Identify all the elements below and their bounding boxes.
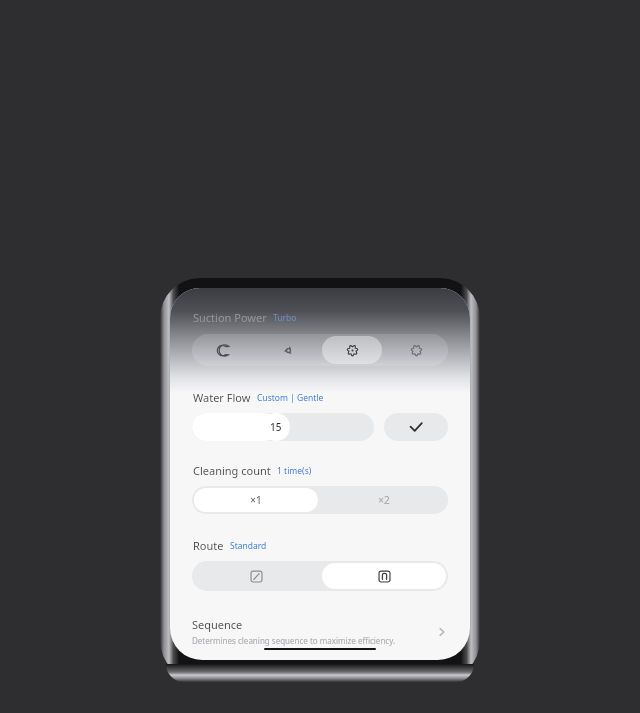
button[interactable]: Route deep <box>322 563 446 589</box>
button[interactable]: ×2 <box>322 488 446 512</box>
button[interactable]: Standard <box>258 336 318 364</box>
staticText: Standard <box>230 540 267 552</box>
staticText: 15 <box>270 420 282 434</box>
staticText: Determines cleaning sequence to maximize… <box>192 635 396 646</box>
button[interactable]: Quiet <box>194 336 254 364</box>
button[interactable]: 15 <box>192 413 374 441</box>
button[interactable]: Sequence <box>170 615 470 648</box>
button[interactable]: Turbo <box>322 336 382 364</box>
button[interactable]: Max <box>386 336 446 364</box>
staticText: 1 time(s) <box>277 465 312 477</box>
staticText: Sequence <box>192 617 243 632</box>
button[interactable]: Route standard <box>194 563 318 589</box>
button[interactable]: ×1 <box>194 488 318 512</box>
staticText: Cleaning count <box>193 463 271 478</box>
staticText: Turbo <box>273 312 297 324</box>
staticText: Suction Power <box>193 310 267 325</box>
staticText: ×1 <box>250 493 262 507</box>
staticText: ×2 <box>378 493 390 507</box>
button[interactable]: Confirm <box>384 413 448 441</box>
staticText: Custom | Gentle <box>257 392 324 404</box>
staticText: Route <box>193 538 224 553</box>
staticText: Water Flow <box>193 390 251 405</box>
